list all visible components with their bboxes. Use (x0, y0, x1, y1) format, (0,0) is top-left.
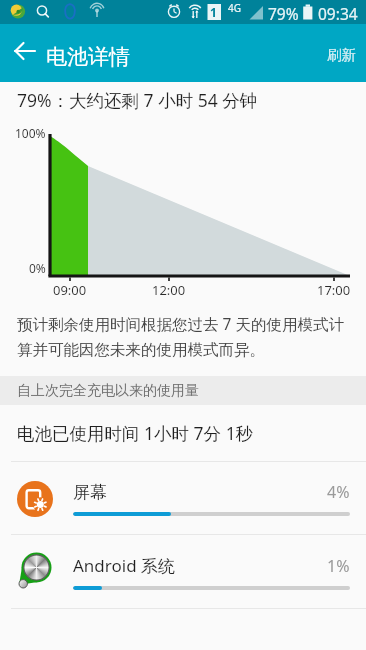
staticText: 自上次完全充电以来的使用量 (17, 382, 199, 400)
staticText: 0% (29, 260, 46, 276)
staticText: 刷新 (327, 46, 356, 64)
staticText: 12:00 (152, 281, 186, 299)
button[interactable]: 刷新 (315, 24, 366, 82)
staticText: 79%：大约还剩 7 小时 54 分钟 (17, 88, 258, 112)
staticText: 79% (268, 3, 299, 24)
staticText: 09:34 (318, 3, 358, 24)
staticText: 预计剩余使用时间根据您过去 7 天的使用模式计算并可能因您未来的使用模式而异。 (17, 313, 347, 359)
staticText: 电池详情 (46, 44, 130, 70)
staticText: 100% (15, 125, 46, 141)
staticText: 09:00 (53, 281, 87, 299)
staticText: 17:00 (317, 281, 351, 299)
button[interactable]: Android 系统 (0, 535, 366, 608)
staticText: 1% (327, 555, 350, 577)
staticText: 4% (327, 481, 350, 503)
staticText: 4G (228, 1, 241, 15)
staticText: Android 系统 (73, 554, 176, 577)
staticText: 电池已使用时间 1小时 7分 1秒 (17, 421, 254, 445)
staticText: 1 (210, 4, 217, 20)
button[interactable]: 屏幕 (0, 462, 366, 535)
button[interactable]: Back (4, 30, 46, 72)
staticText: 屏幕 (73, 482, 107, 503)
